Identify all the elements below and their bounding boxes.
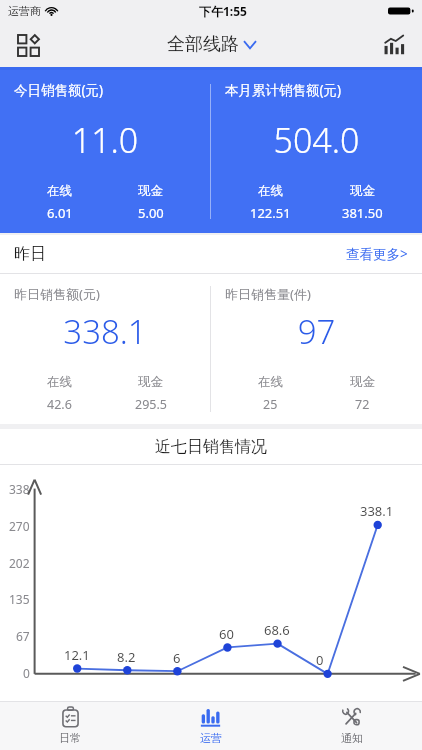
staticText: 日常 [59, 731, 81, 745]
staticText: 现金 [350, 374, 375, 390]
staticText: 运营商 [8, 4, 41, 18]
staticText: 67 [16, 628, 30, 644]
button[interactable]: Menu [6, 23, 50, 67]
staticText: 295.5 [135, 396, 167, 413]
staticText: 122.51 [250, 204, 291, 222]
staticText: 42.6 [47, 396, 72, 413]
button[interactable]: 全部线路 [167, 33, 256, 56]
staticText: 现金 [138, 183, 163, 199]
staticText: 12.1 [64, 646, 90, 664]
staticText: 68.6 [264, 621, 290, 639]
staticText: 25 [263, 396, 278, 413]
staticText: 现金 [138, 374, 163, 390]
staticText: 全部线路 [167, 33, 239, 56]
staticText: 在线 [258, 183, 283, 199]
staticText: 6.01 [47, 204, 73, 222]
staticText: 72 [355, 396, 370, 413]
staticText: 381.50 [342, 204, 383, 222]
staticText: 338.1 [14, 309, 196, 354]
staticText: 338 [9, 481, 30, 497]
staticText: 通知 [341, 731, 363, 745]
staticText: 近七日销售情况 [155, 437, 267, 457]
staticText: 0 [23, 665, 30, 681]
staticText: 在线 [47, 183, 72, 199]
staticText: 下午1:55 [199, 3, 247, 19]
staticText: 现金 [350, 183, 375, 199]
staticText: 97 [225, 309, 408, 354]
staticText: 在线 [258, 374, 283, 390]
staticText: 202 [9, 555, 30, 571]
staticText: 270 [9, 518, 30, 534]
staticText: 在线 [47, 374, 72, 390]
staticText: 0 [316, 651, 324, 669]
button[interactable]: 通知 [281, 702, 422, 750]
staticText: 8.2 [117, 648, 136, 666]
staticText: 昨日销售量(件) [225, 285, 311, 303]
staticText: 本月累计销售额(元) [225, 81, 342, 99]
button[interactable]: 日常 [0, 702, 140, 750]
button[interactable]: 运营 [140, 702, 281, 750]
staticText: 6 [173, 649, 181, 667]
staticText: 135 [9, 591, 30, 607]
staticText: 338.1 [360, 502, 394, 520]
staticText: 504.0 [225, 117, 408, 163]
staticText: 查看更多> [346, 245, 408, 263]
staticText: 今日销售额(元) [14, 81, 104, 99]
staticText: 60 [219, 625, 234, 643]
staticText: 11.0 [14, 117, 196, 163]
staticText: 5.00 [138, 204, 164, 222]
staticText: 运营 [200, 731, 222, 745]
staticText: 昨日销售额(元) [14, 285, 100, 303]
button[interactable]: Statistics [372, 23, 416, 67]
button[interactable]: 查看更多> [346, 245, 408, 263]
staticText: 昨日 [14, 244, 46, 264]
